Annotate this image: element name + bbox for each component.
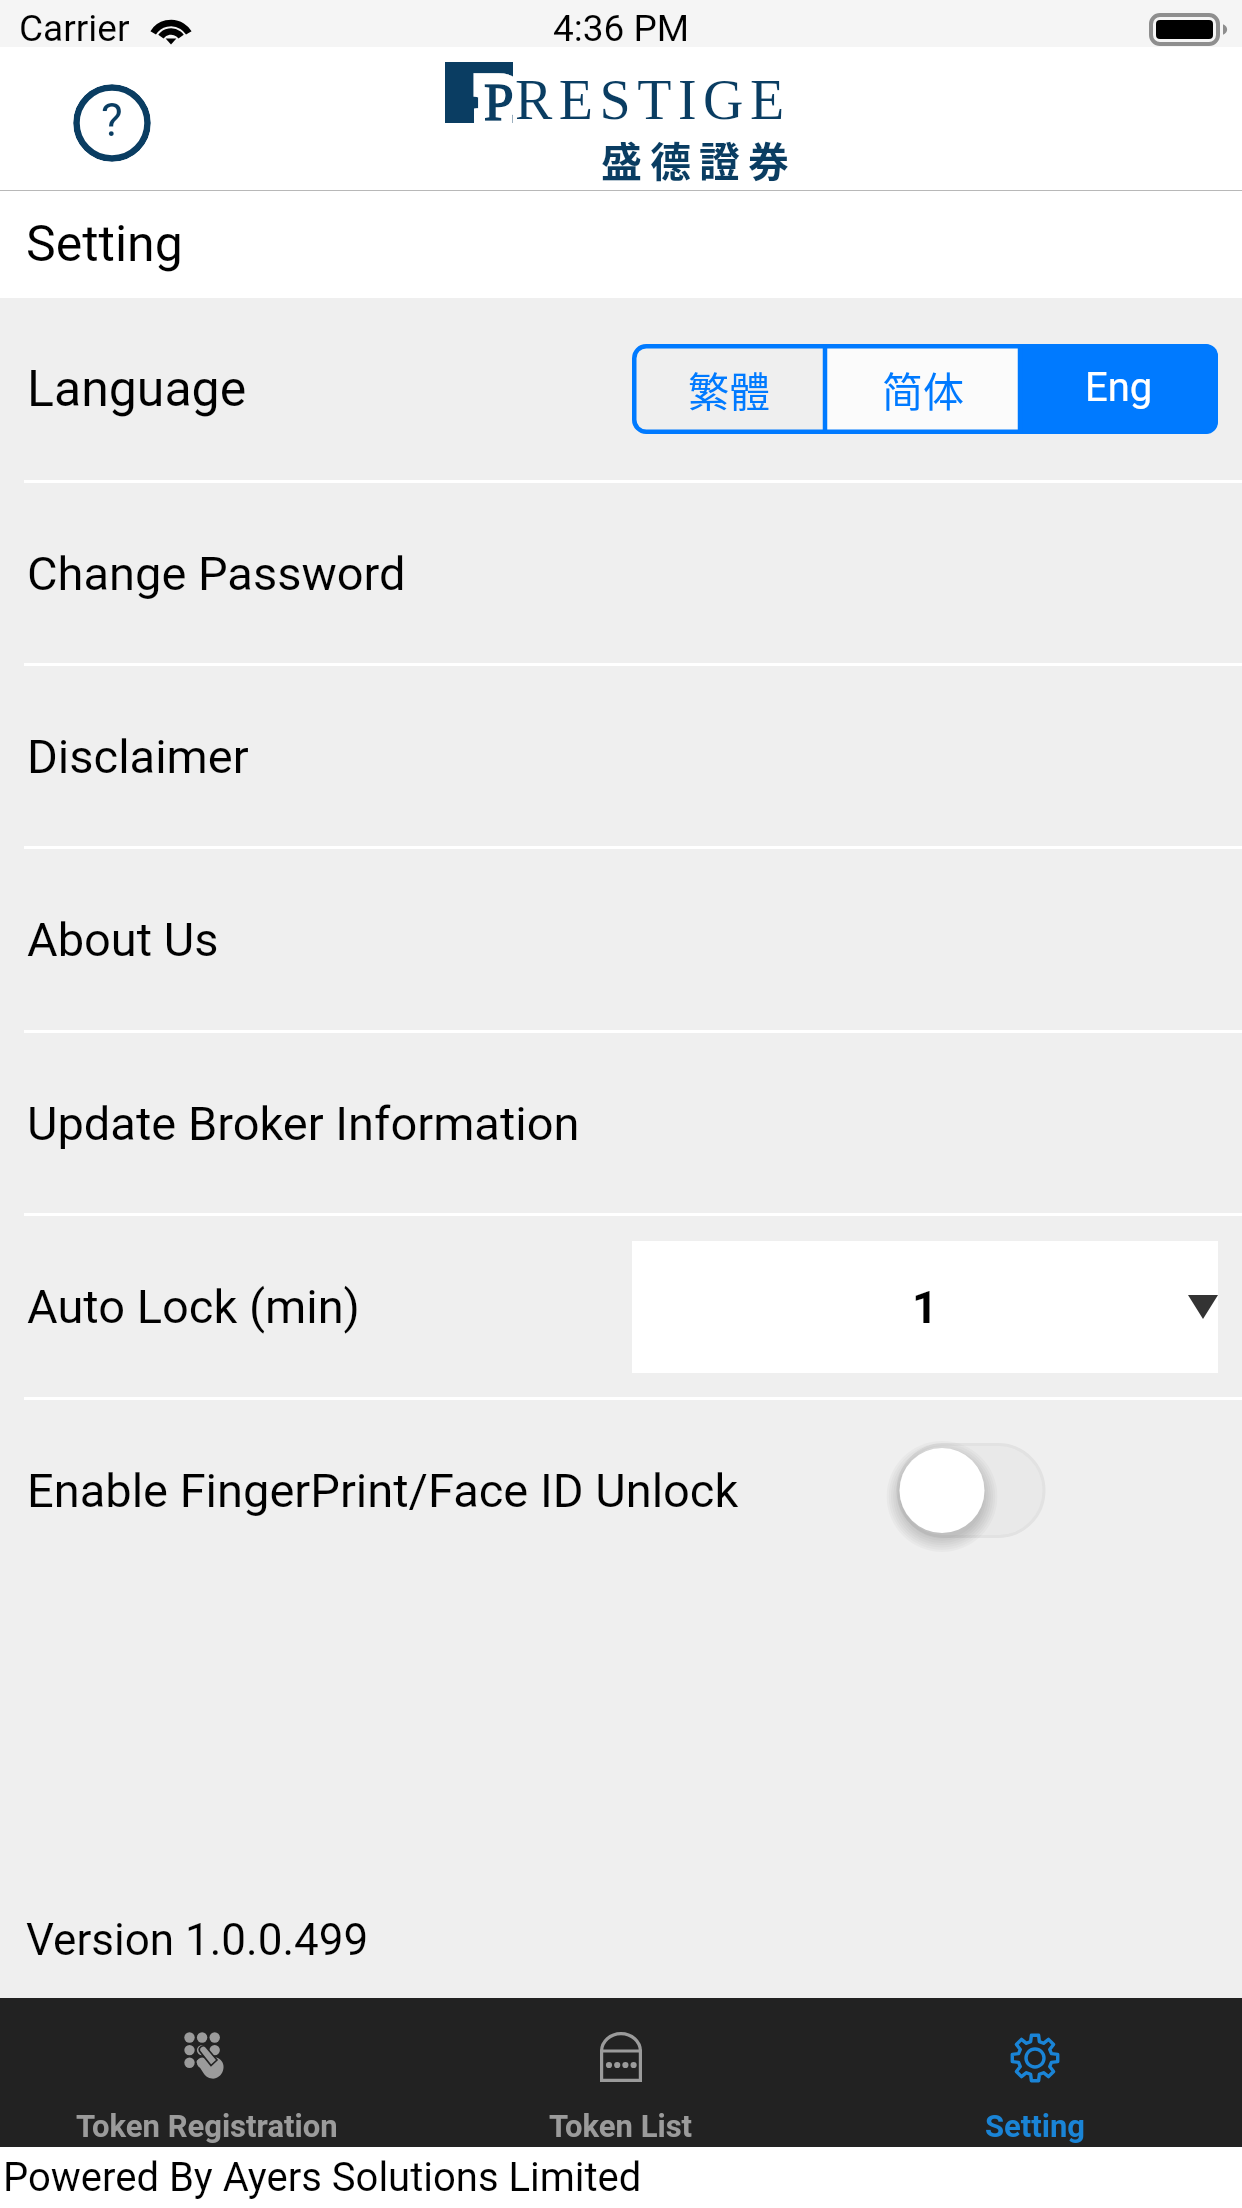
staticText: Setting bbox=[985, 2108, 1086, 2144]
staticText: Auto Lock (min) bbox=[27, 1279, 360, 1334]
staticText: Version 1.0.0.499 bbox=[26, 1914, 369, 1966]
button[interactable]: 简体 bbox=[825, 344, 1020, 434]
staticText: Powered By Ayers Solutions Limited bbox=[3, 2154, 642, 2201]
staticText: Token Registration bbox=[76, 2108, 338, 2144]
staticText: Carrier bbox=[19, 7, 130, 50]
button[interactable]: 1 bbox=[632, 1241, 1218, 1373]
staticText: Language bbox=[27, 360, 247, 419]
button[interactable]: Help bbox=[73, 84, 151, 162]
staticText: 繁體 bbox=[688, 359, 770, 418]
button[interactable]: Enable FingerPrint Face ID Unlock bbox=[880, 1426, 1061, 1555]
staticText: Setting bbox=[26, 215, 183, 274]
button[interactable]: Eng bbox=[1020, 344, 1218, 434]
button[interactable]: Change Password bbox=[0, 483, 1242, 663]
button[interactable]: Token Registration bbox=[0, 1998, 414, 2147]
staticText: 4:36 PM bbox=[553, 7, 690, 50]
staticText: P bbox=[484, 73, 513, 123]
staticText: Change Password bbox=[27, 546, 406, 601]
staticText: Enable FingerPrint/Face ID Unlock bbox=[27, 1463, 739, 1518]
staticText: About Us bbox=[27, 912, 219, 967]
staticText: Disclaimer bbox=[27, 729, 249, 784]
button[interactable]: 繁體 bbox=[632, 344, 825, 434]
button[interactable]: Update Broker Information bbox=[0, 1033, 1242, 1213]
button[interactable]: About Us bbox=[0, 849, 1242, 1030]
staticText: P bbox=[484, 73, 513, 123]
staticText: Eng bbox=[1085, 364, 1153, 411]
staticText: 盛德證券 bbox=[601, 129, 797, 188]
button[interactable]: Token List bbox=[414, 1998, 828, 2147]
staticText: Token List bbox=[549, 2108, 693, 2144]
staticText: Update Broker Information bbox=[27, 1096, 580, 1151]
staticText: RESTIGE bbox=[515, 69, 791, 131]
staticText: 简体 bbox=[882, 359, 964, 418]
staticText: ? bbox=[101, 93, 123, 147]
button[interactable]: Disclaimer bbox=[0, 666, 1242, 846]
staticText: 1 bbox=[912, 1281, 938, 1334]
button[interactable]: Setting bbox=[828, 1998, 1242, 2147]
